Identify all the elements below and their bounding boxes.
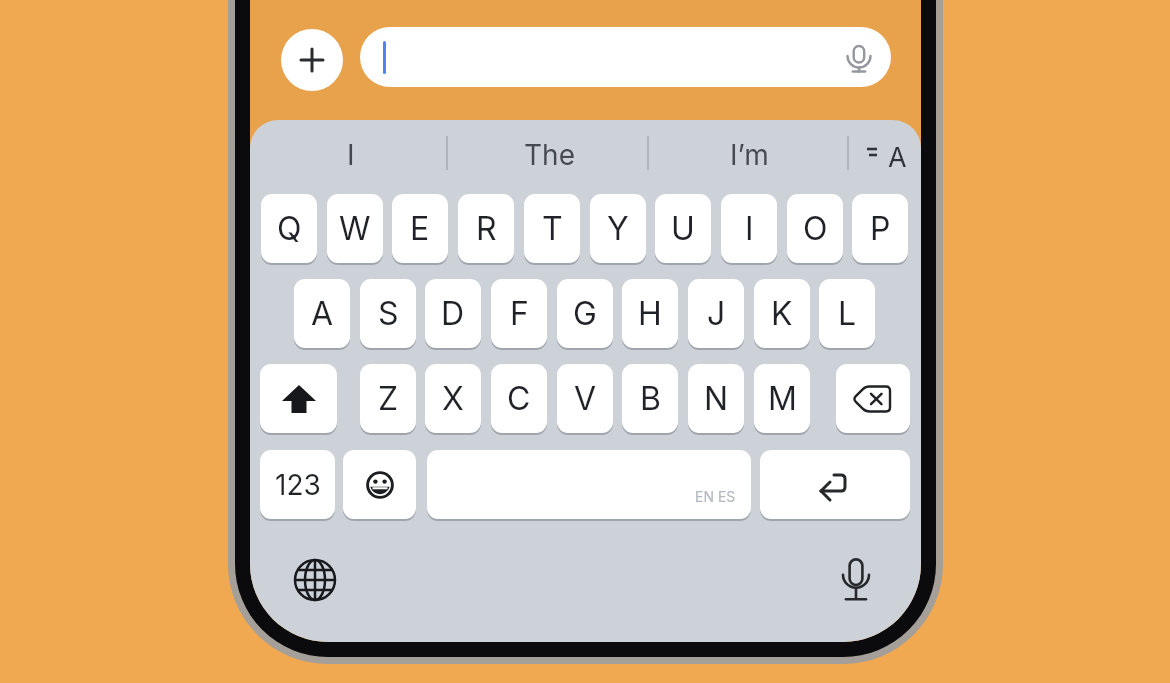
staticText: L <box>838 294 857 333</box>
button[interactable]: K <box>754 279 810 348</box>
button[interactable]: V <box>557 364 613 433</box>
button[interactable]: A <box>862 134 914 176</box>
staticText: C <box>507 379 531 418</box>
button[interactable] <box>838 554 874 602</box>
staticText: J <box>707 294 726 333</box>
button[interactable]: X <box>425 364 481 433</box>
staticText: P <box>870 209 891 248</box>
button[interactable]: I <box>311 131 391 179</box>
staticText: I’m <box>730 138 769 172</box>
button[interactable]: M <box>754 364 810 433</box>
button[interactable]: S <box>360 279 416 348</box>
button[interactable]: N <box>688 364 744 433</box>
staticText: The <box>524 138 575 172</box>
staticText: S <box>378 294 399 333</box>
button[interactable]: T <box>524 194 580 263</box>
button[interactable]: R <box>458 194 514 263</box>
staticText: I <box>347 138 355 172</box>
staticText: X <box>442 379 464 418</box>
staticText: E <box>410 209 430 248</box>
button[interactable]: P <box>852 194 908 263</box>
button[interactable]: I’m <box>699 131 799 179</box>
staticText: G <box>573 294 597 333</box>
staticText: T <box>542 209 563 248</box>
staticText: V <box>574 379 597 418</box>
staticText: A <box>888 141 907 174</box>
staticText: 123 <box>275 468 321 502</box>
button[interactable]: E <box>392 194 448 263</box>
button[interactable] <box>427 450 751 519</box>
button[interactable] <box>260 364 337 433</box>
button[interactable]: L <box>819 279 875 348</box>
button[interactable] <box>343 450 416 519</box>
button[interactable]: I <box>721 194 777 263</box>
button[interactable]: F <box>491 279 547 348</box>
button[interactable]: O <box>787 194 843 263</box>
button[interactable]: The <box>499 131 599 179</box>
staticText: U <box>671 209 695 248</box>
button[interactable]: B <box>622 364 678 433</box>
button[interactable]: C <box>491 364 547 433</box>
button[interactable]: G <box>557 279 613 348</box>
staticText: M <box>768 379 797 418</box>
staticText: A <box>311 294 334 333</box>
button[interactable]: J <box>688 279 744 348</box>
button[interactable]: Z <box>360 364 416 433</box>
button[interactable] <box>836 364 910 433</box>
button[interactable]: D <box>425 279 481 348</box>
button[interactable] <box>360 27 891 87</box>
button[interactable]: H <box>622 279 678 348</box>
button[interactable]: Q <box>261 194 317 263</box>
staticText: Q <box>277 209 302 248</box>
button[interactable]: 123 <box>260 450 335 519</box>
staticText: F <box>510 294 529 333</box>
button[interactable] <box>291 556 339 604</box>
staticText: I <box>745 209 754 248</box>
button[interactable]: Y <box>590 194 646 263</box>
staticText: Z <box>378 379 399 418</box>
button[interactable] <box>281 29 343 91</box>
staticText: B <box>640 379 661 418</box>
staticText: EN ES <box>695 488 736 505</box>
staticText: Y <box>607 209 629 248</box>
button[interactable]: A <box>294 279 350 348</box>
staticText: D <box>441 294 465 333</box>
staticText: R <box>476 209 497 248</box>
staticText: O <box>803 209 828 248</box>
button[interactable] <box>760 450 910 519</box>
staticText: K <box>771 294 793 333</box>
button[interactable]: W <box>327 194 383 263</box>
button[interactable]: U <box>655 194 711 263</box>
staticText: N <box>704 379 729 418</box>
staticText: W <box>339 209 371 248</box>
staticText: H <box>638 294 662 333</box>
